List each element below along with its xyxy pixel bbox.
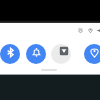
button[interactable]: Alarm bbox=[75, 25, 85, 35]
button[interactable]: Notifications bbox=[26, 44, 46, 64]
button[interactable]: Location bbox=[84, 44, 100, 64]
button[interactable]: Airplane mode bbox=[93, 25, 100, 35]
button[interactable]: Screen cast bbox=[51, 44, 71, 64]
button[interactable]: Location bbox=[85, 25, 95, 35]
button[interactable]: Bluetooth bbox=[0, 44, 20, 64]
